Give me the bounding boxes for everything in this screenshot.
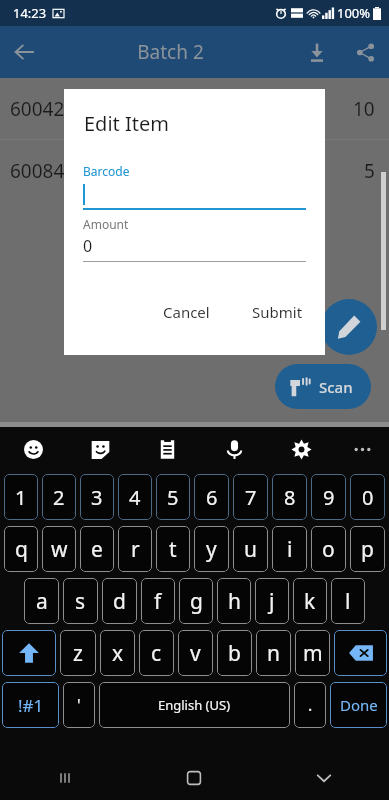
button[interactable]: b [217,630,252,676]
button[interactable]: ' [63,682,95,728]
staticText: e [91,535,103,564]
button[interactable]: Edit item [321,299,377,355]
staticText: 8 [284,484,296,511]
button[interactable]: l [331,578,365,624]
staticText: Barcode [83,163,130,179]
button[interactable]: t [156,526,190,572]
staticText: Batch 2 [48,39,293,65]
staticText: Amount [83,216,129,232]
staticText: w [51,535,68,564]
button[interactable]: Home [129,756,259,800]
button[interactable]: !#1 [2,682,59,728]
button[interactable]: n [256,630,291,676]
staticText: n [267,639,280,668]
staticText: h [228,587,241,616]
button[interactable]: . [294,682,326,728]
button[interactable]: x [100,630,135,676]
button[interactable]: h [217,578,251,624]
button[interactable]: 1 [4,474,38,520]
button[interactable]: 6 [194,474,229,520]
staticText: 5 [167,484,179,511]
staticText: t [169,535,177,564]
staticText: q [15,535,28,564]
staticText: d [113,587,126,616]
staticText: . [308,694,313,716]
button[interactable]: 2 [42,474,76,520]
button[interactable]: f [141,578,175,624]
staticText: r [131,535,140,564]
button[interactable]: Scan [275,364,371,409]
button[interactable]: 0 [350,474,385,520]
staticText: s [75,587,86,616]
staticText: p [361,535,374,564]
staticText: 0 [83,235,93,257]
staticText: f [154,587,162,616]
button[interactable]: w [42,526,76,572]
button[interactable]: y [194,526,229,572]
button[interactable]: j [255,578,289,624]
staticText: 60042 [10,96,65,122]
staticText: 14:23 [13,4,47,22]
button[interactable]: m [295,630,330,676]
button[interactable]: z [60,630,96,676]
button[interactable]: s [63,578,98,624]
staticText: 10 [353,96,375,122]
button[interactable]: English (US) [99,682,290,728]
button[interactable]: e [80,526,114,572]
button[interactable]: 9 [311,474,346,520]
button[interactable]: o [311,526,346,572]
staticText: u [244,535,257,564]
button[interactable]: k [293,578,327,624]
button[interactable]: u [233,526,268,572]
staticText: 1 [15,484,27,511]
button[interactable]: g [179,578,213,624]
staticText: x [112,639,124,668]
button[interactable]: 4 [118,474,152,520]
staticText: a [36,587,48,616]
button[interactable]: More [335,427,389,471]
staticText: l [345,587,351,616]
staticText: !#1 [18,694,44,717]
staticText: Submit [252,302,303,322]
staticText: m [303,639,323,668]
staticText: o [322,535,335,564]
staticText: 60084 [10,158,65,184]
button[interactable]: 8 [272,474,307,520]
staticText: j [269,587,275,616]
button[interactable]: 7 [233,474,268,520]
button[interactable]: c [139,630,174,676]
button[interactable]: d [102,578,137,624]
button[interactable]: i [272,526,307,572]
button[interactable]: p [350,526,385,572]
staticText: g [190,587,203,616]
staticText: 4 [129,484,141,511]
staticText: Edit Item [84,110,169,137]
button[interactable]: Submit [242,295,313,329]
button[interactable]: Voice input [201,427,268,471]
staticText: Cancel [163,302,210,322]
button[interactable]: Done [330,682,387,728]
button[interactable] [334,630,387,676]
button[interactable]: 60042 [0,78,389,139]
staticText: z [73,639,83,668]
button[interactable]: Download [293,28,341,76]
button[interactable]: Recents [0,756,129,800]
button[interactable]: q [4,526,38,572]
button[interactable]: r [118,526,152,572]
button[interactable]: 5 [156,474,190,520]
button[interactable]: Cancel [153,295,220,329]
button[interactable]: 3 [80,474,114,520]
button[interactable]: Back [0,28,48,76]
button[interactable]: Stickers [67,427,134,471]
button[interactable]: Settings [268,427,335,471]
button[interactable]: a [24,578,59,624]
staticText: 5 [364,158,375,184]
button[interactable]: 60084 [0,140,389,201]
button[interactable] [2,630,56,676]
button[interactable]: Hide keyboard [259,756,389,800]
button[interactable]: Clipboard [134,427,201,471]
button[interactable]: v [178,630,213,676]
staticText: 9 [323,484,335,511]
button[interactable]: Share [341,28,389,76]
button[interactable]: Emoji [0,427,67,471]
